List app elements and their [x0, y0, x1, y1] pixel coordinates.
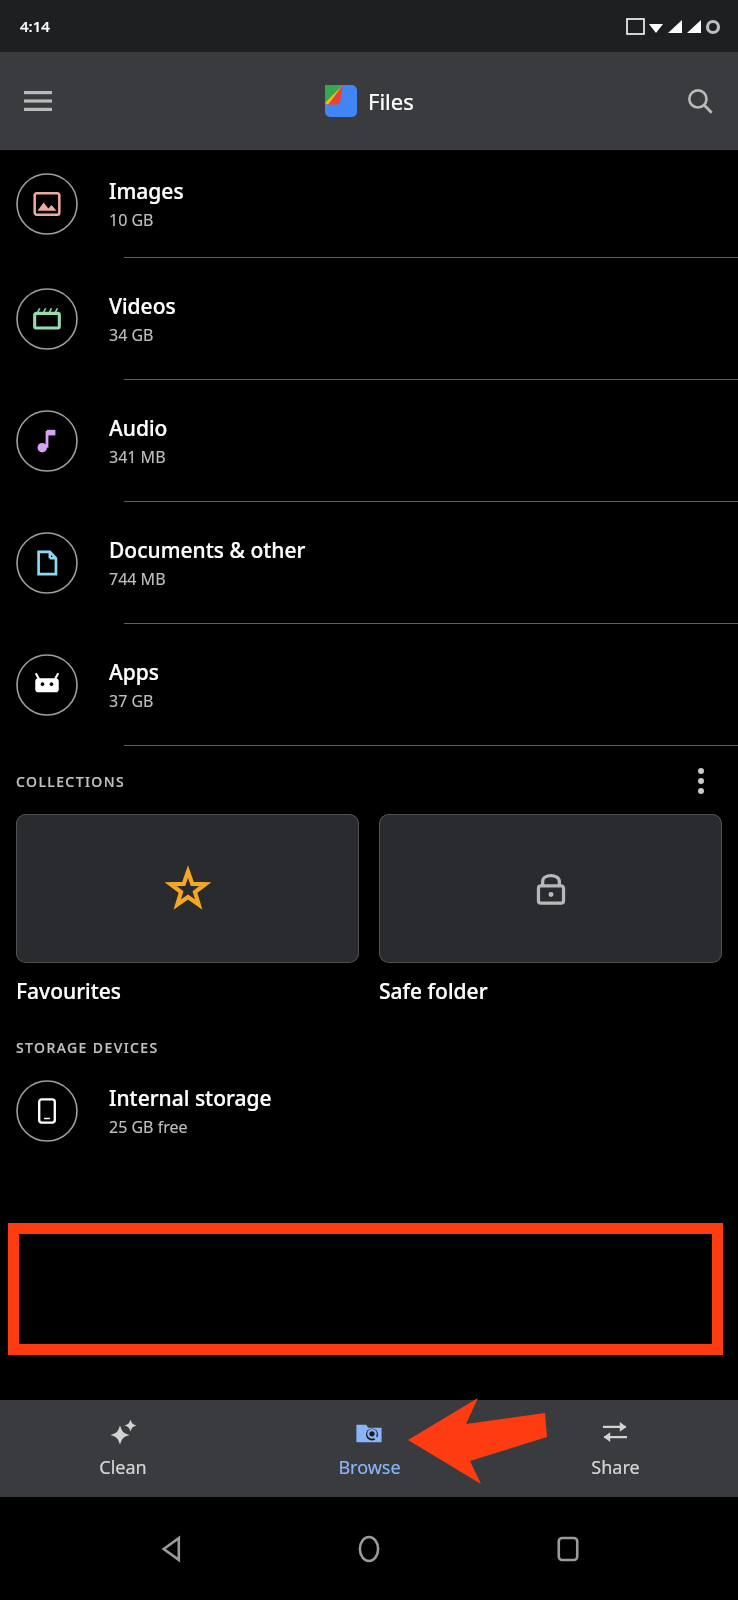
staticText: Apps [109, 658, 160, 687]
button[interactable]: Documents & other [0, 502, 738, 624]
button[interactable]: Apps [0, 624, 738, 746]
staticText: 37 GB [109, 690, 154, 712]
button[interactable]: More options [678, 764, 724, 798]
button[interactable]: Favourites [16, 814, 359, 1006]
button[interactable]: Videos [0, 258, 738, 380]
button[interactable]: Internal storage [0, 1078, 738, 1144]
staticText: Internal storage [109, 1084, 272, 1113]
staticText: Videos [109, 292, 176, 321]
staticText: Audio [109, 414, 168, 443]
staticText: 341 MB [109, 446, 166, 468]
staticText: Share [591, 1455, 640, 1480]
staticText: COLLECTIONS [16, 772, 125, 791]
button[interactable]: Audio [0, 380, 738, 502]
staticText: 744 MB [109, 568, 166, 590]
staticText: Images [109, 177, 184, 206]
button[interactable]: Browse [246, 1400, 492, 1497]
button[interactable]: Clean [0, 1400, 246, 1497]
staticText: Safe folder [379, 977, 488, 1006]
staticText: Files [368, 86, 414, 116]
staticText: Favourites [16, 977, 122, 1006]
staticText: 34 GB [109, 324, 154, 346]
button[interactable]: Search [672, 73, 728, 129]
staticText: 4:14 [20, 16, 50, 36]
staticText: Documents & other [109, 536, 306, 565]
button[interactable]: Home [341, 1521, 397, 1577]
staticText: 10 GB [109, 209, 154, 231]
button[interactable]: Images [0, 150, 738, 258]
staticText: STORAGE DEVICES [16, 1038, 159, 1057]
button[interactable]: Recent apps [540, 1521, 596, 1577]
button[interactable]: Open navigation menu [10, 73, 66, 129]
staticText: Browse [338, 1455, 401, 1480]
button[interactable]: Share [492, 1400, 738, 1497]
staticText: 25 GB free [109, 1116, 188, 1138]
button[interactable]: Back [143, 1521, 199, 1577]
button[interactable]: Safe folder [379, 814, 722, 1006]
staticText: Clean [99, 1455, 147, 1480]
